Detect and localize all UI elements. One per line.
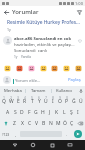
button[interactable]: Emoji 6 (74, 64, 82, 72)
button[interactable]: Resimle Kütüye Hurkey Profesiyonpek (0, 17, 85, 34)
staticText: 0 (66, 96, 68, 100)
button[interactable]: B (41, 118, 47, 128)
button[interactable]: Ç (69, 118, 75, 128)
button[interactable]: N (48, 118, 54, 128)
button[interactable]: Filter (75, 8, 83, 16)
button[interactable]: Voice input (77, 86, 85, 95)
staticText: Q (2, 98, 6, 105)
button[interactable]: Ş (68, 107, 74, 117)
button[interactable]: Shift (1, 118, 10, 128)
button[interactable]: I (75, 107, 81, 117)
button[interactable]: Backspace (76, 118, 84, 128)
button[interactable]: Paylaş (67, 77, 82, 83)
button[interactable]: A (4, 107, 11, 117)
button[interactable]: Kullanıcı (52, 86, 77, 95)
button[interactable]: 5 (29, 96, 35, 106)
button[interactable]: 7 (43, 96, 49, 106)
button[interactable]: Emoji 3 (39, 64, 47, 72)
button[interactable]: 0 (64, 96, 70, 106)
staticText: L (63, 109, 66, 116)
staticText: W (9, 98, 14, 105)
staticText: . (66, 132, 68, 137)
button[interactable]: Emoji 4 (50, 64, 58, 72)
staticText: S (14, 109, 17, 116)
staticText: 1:00 (75, 1, 83, 6)
staticText: Resimle Kütüye Hurkey Profesiyonpek (7, 19, 81, 26)
button[interactable]: Back (11, 141, 19, 149)
staticText: D (20, 109, 24, 116)
button[interactable]: C (27, 118, 33, 128)
button[interactable]: 8 (50, 96, 56, 106)
staticText: A (6, 109, 10, 116)
button[interactable]: Emoji 5 (62, 64, 70, 72)
staticText: 8 (52, 96, 54, 100)
button[interactable]: ?123 (1, 129, 11, 139)
button[interactable]: Back (2, 8, 10, 16)
staticText: Ü (79, 98, 83, 105)
button[interactable]: F (26, 107, 32, 117)
staticText: 6 (38, 96, 40, 100)
button[interactable]: D (19, 107, 25, 117)
button[interactable]: Tamam (26, 86, 51, 95)
staticText: 5 (31, 96, 33, 100)
button[interactable]: Emoji 0 (3, 64, 11, 72)
button[interactable]: J (47, 107, 53, 117)
button[interactable]: Ğ (71, 96, 77, 106)
button[interactable]: Yorum ekle... (13, 77, 67, 84)
staticText: 9 (59, 96, 61, 100)
staticText: R (23, 98, 27, 105)
staticText: Kullanıcı (56, 88, 73, 94)
button[interactable]: Z (11, 118, 18, 128)
staticText: K (55, 109, 59, 116)
button[interactable]: 9 (57, 96, 63, 106)
staticText: O (58, 98, 62, 105)
staticText: 1y (14, 55, 18, 59)
staticText: C (28, 120, 32, 127)
button[interactable]: . (63, 129, 70, 139)
button[interactable]: V (34, 118, 40, 128)
button[interactable]: Ü (78, 96, 84, 106)
staticText: Y (38, 98, 41, 105)
button[interactable]: L (61, 107, 67, 117)
button[interactable]: 4 (22, 96, 28, 106)
button[interactable]: Home (29, 141, 37, 149)
staticText: E (17, 98, 20, 105)
staticText: 2 (10, 96, 12, 100)
staticText: N (49, 120, 53, 127)
button[interactable]: 2 (8, 96, 14, 106)
staticText: 7 (45, 96, 47, 100)
button[interactable]: Hide keyboard (66, 141, 74, 149)
button[interactable]: H (40, 107, 46, 117)
button[interactable]: Recents (48, 141, 56, 149)
staticText: I (52, 98, 54, 105)
button[interactable]: 1 (1, 96, 7, 106)
button[interactable]: S (12, 107, 18, 117)
button[interactable]: Emoji 2 (27, 64, 35, 72)
button[interactable]: 3 (15, 96, 21, 106)
button[interactable]: Merhaba (0, 86, 25, 95)
staticText: Sonuclandi canlı (14, 48, 47, 54)
button[interactable]: 6 (36, 96, 42, 106)
staticText: B (42, 120, 46, 127)
button[interactable]: K (54, 107, 60, 117)
staticText: M (56, 120, 61, 127)
staticText: abce.a86 Sonuclandi en cok (14, 36, 72, 42)
staticText: G (34, 109, 38, 116)
button[interactable]: X (19, 118, 26, 128)
staticText: X (21, 120, 24, 127)
button[interactable]: abce.a86 Sonuclandi en cok (0, 34, 85, 61)
staticText: F (28, 109, 31, 116)
staticText: P (65, 98, 69, 105)
staticText: hazirladim, etkinlik ve paylaşım olsun (14, 42, 75, 48)
button[interactable]: Emoji 1 (15, 64, 23, 72)
button[interactable]: G (33, 107, 39, 117)
staticText: Tamam (31, 88, 46, 94)
button[interactable]: M (55, 118, 61, 128)
button[interactable]: Like (77, 38, 82, 43)
staticText: Yorum ekle... (15, 78, 41, 84)
button[interactable]: Ö (62, 118, 68, 128)
staticText: Ç (70, 120, 74, 127)
button[interactable]: Send (71, 129, 84, 139)
button[interactable]: Emoji keyboard (12, 129, 19, 139)
